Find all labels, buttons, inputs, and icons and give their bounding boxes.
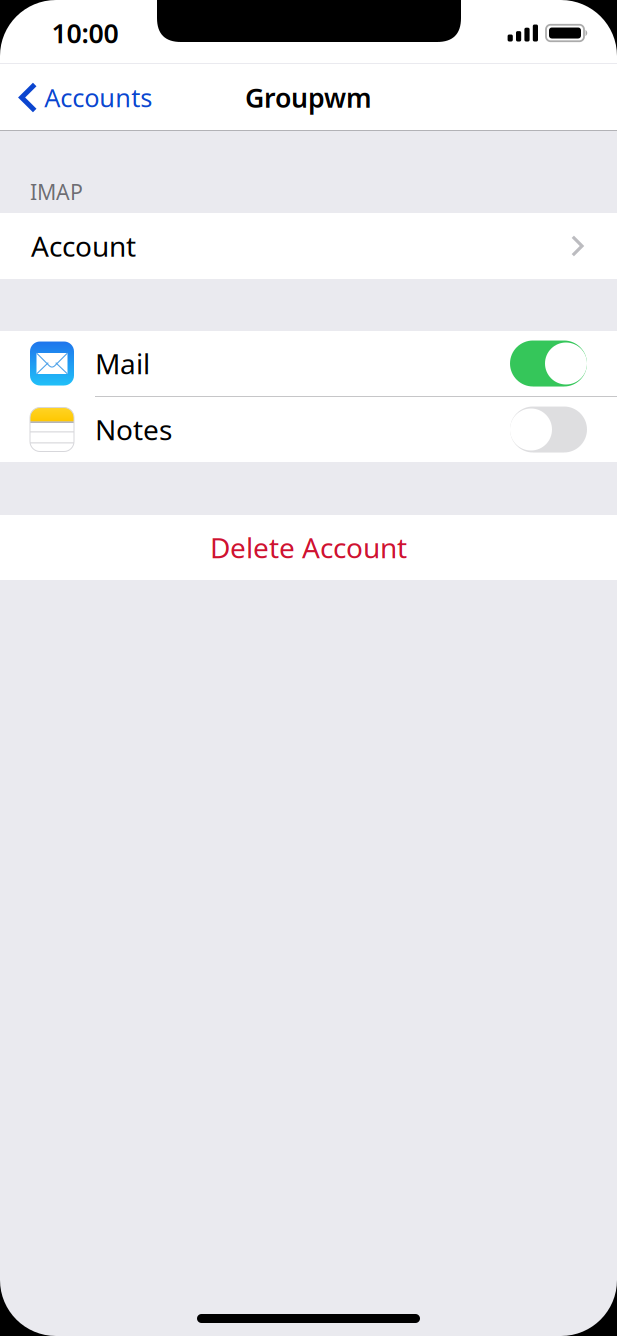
button[interactable]: Accounts xyxy=(0,71,164,124)
button[interactable]: Delete Account xyxy=(0,515,617,580)
staticText: Mail xyxy=(95,345,150,382)
staticText: Accounts xyxy=(44,81,152,114)
staticText: IMAP xyxy=(30,178,83,206)
staticText: 10:00 xyxy=(51,15,118,51)
button[interactable]: Mail xyxy=(0,331,617,396)
button[interactable]: Notes xyxy=(0,397,617,462)
staticText: Notes xyxy=(95,411,172,448)
staticText: Delete Account xyxy=(210,529,407,566)
button[interactable]: Account xyxy=(0,213,617,279)
staticText: Account xyxy=(31,227,136,265)
staticText: Groupwm xyxy=(245,80,372,115)
